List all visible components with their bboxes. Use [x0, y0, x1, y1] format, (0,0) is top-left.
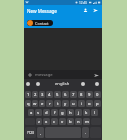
- button[interactable]: 8: [78, 91, 85, 98]
- staticText: 1: [27, 92, 30, 98]
- button[interactable]: 4: [46, 91, 53, 98]
- staticText: 6: [64, 92, 67, 98]
- staticText: ?123: [27, 131, 34, 135]
- button[interactable]: u: [70, 100, 77, 107]
- staticText: b: [69, 119, 72, 125]
- staticText: Contact: [35, 21, 49, 26]
- button[interactable]: 6: [62, 91, 69, 98]
- staticText: english: [55, 81, 70, 87]
- button[interactable]: 7: [70, 91, 77, 98]
- staticText: 7: [72, 92, 75, 98]
- staticText: 8: [80, 92, 83, 98]
- staticText: n: [77, 119, 80, 125]
- staticText: message: [35, 72, 53, 78]
- button[interactable]: Send: [91, 6, 100, 15]
- staticText: x: [45, 119, 48, 125]
- button[interactable]: 9: [86, 91, 93, 98]
- staticText: 12:45: [79, 1, 88, 5]
- staticText: s: [37, 110, 40, 116]
- button[interactable]: d: [43, 109, 50, 116]
- staticText: 4: [48, 92, 51, 98]
- staticText: .: [85, 130, 87, 136]
- button[interactable]: i: [78, 100, 85, 107]
- button[interactable]: 0: [94, 91, 101, 98]
- button[interactable]: a: [28, 109, 34, 116]
- button[interactable]: 2: [32, 91, 38, 98]
- button[interactable]: s: [35, 109, 42, 116]
- staticText: New Message: [27, 8, 57, 14]
- button[interactable]: g: [59, 109, 66, 116]
- staticText: j: [78, 110, 80, 116]
- staticText: t: [57, 101, 59, 107]
- button[interactable]: More options: [94, 81, 100, 87]
- button[interactable]: .: [82, 127, 89, 138]
- button[interactable]: 1: [25, 91, 31, 98]
- button[interactable]: Sticker: [35, 81, 41, 87]
- button[interactable]: Contact: [27, 20, 53, 26]
- button[interactable]: b: [67, 118, 74, 125]
- button[interactable]: l: [91, 109, 98, 116]
- button[interactable]: z: [36, 118, 42, 125]
- button[interactable]: 3: [39, 91, 45, 98]
- staticText: k: [85, 110, 88, 116]
- button[interactable]: e: [39, 100, 45, 107]
- staticText: f: [54, 110, 56, 116]
- button[interactable]: r: [46, 100, 53, 107]
- staticText: w: [33, 101, 37, 107]
- button[interactable]: v: [59, 118, 66, 125]
- staticText: q: [27, 101, 30, 107]
- staticText: m: [85, 119, 89, 125]
- button[interactable]: t: [54, 100, 61, 107]
- staticText: h: [69, 110, 72, 116]
- button[interactable]: w: [32, 100, 38, 107]
- staticText: a: [30, 110, 33, 116]
- button[interactable]: 5: [54, 91, 61, 98]
- button[interactable]: q: [25, 100, 31, 107]
- button[interactable]: x: [43, 118, 50, 125]
- staticText: l: [94, 110, 96, 116]
- button[interactable]: Add contact: [81, 6, 90, 15]
- staticText: u: [72, 101, 75, 107]
- button[interactable]: Send message: [92, 71, 100, 79]
- button[interactable]: m: [83, 118, 90, 125]
- staticText: o: [88, 101, 91, 107]
- staticText: z: [38, 119, 40, 125]
- button[interactable]: h: [67, 109, 74, 116]
- staticText: 5: [56, 92, 59, 98]
- button[interactable]: j: [75, 109, 82, 116]
- staticText: y: [64, 101, 67, 107]
- staticText: e: [41, 101, 44, 107]
- button[interactable]: k: [83, 109, 90, 116]
- staticText: 9: [88, 92, 91, 98]
- staticText: i: [81, 101, 83, 107]
- staticText: 3: [41, 92, 44, 98]
- button[interactable]: Emoji: [25, 81, 31, 87]
- button[interactable]: Attach: [26, 71, 33, 78]
- staticText: g: [61, 110, 64, 116]
- button[interactable]: o: [86, 100, 93, 107]
- staticText: v: [61, 119, 64, 125]
- button[interactable]: y: [62, 100, 69, 107]
- button[interactable]: c: [51, 118, 58, 125]
- button[interactable]: p: [94, 100, 101, 107]
- button[interactable]: ?123: [25, 127, 36, 138]
- staticText: 0: [96, 92, 99, 98]
- staticText: ,: [40, 130, 42, 136]
- staticText: d: [45, 110, 48, 116]
- staticText: c: [53, 119, 56, 125]
- button[interactable]: ,: [37, 127, 44, 138]
- staticText: p: [96, 101, 99, 107]
- staticText: 2: [34, 92, 37, 98]
- button[interactable]: n: [75, 118, 82, 125]
- button[interactable]: f: [51, 109, 58, 116]
- button[interactable]: Settings: [80, 81, 86, 87]
- staticText: r: [49, 101, 51, 107]
